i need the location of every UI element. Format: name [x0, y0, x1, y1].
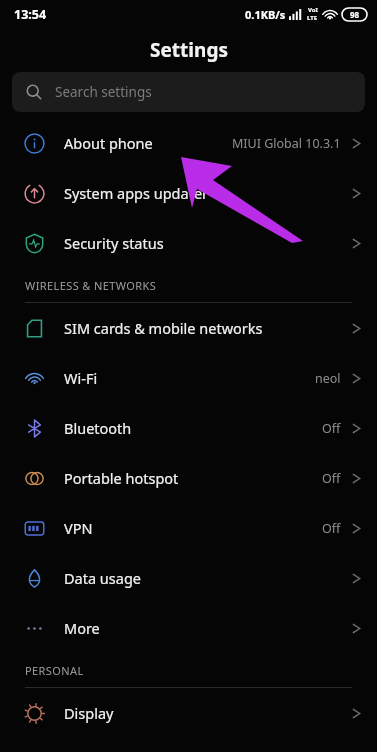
button[interactable]: About phone [0, 118, 377, 168]
staticText: Data usage [64, 568, 352, 588]
staticText: Settings [150, 37, 228, 63]
staticText: 98 [350, 9, 360, 20]
staticText: Search settings [55, 83, 152, 101]
staticText: Off [322, 470, 341, 487]
staticText: Portable hotspot [64, 468, 322, 488]
button[interactable]: VPN [0, 503, 377, 553]
button[interactable]: Wi-Fi [0, 353, 377, 403]
button[interactable]: System apps updater [0, 168, 377, 218]
button[interactable]: Portable hotspot [0, 453, 377, 503]
staticText: LTE [307, 14, 318, 22]
button[interactable]: Display [0, 688, 377, 738]
staticText: System apps updater [64, 183, 352, 203]
staticText: SIM cards & mobile networks [64, 318, 352, 338]
staticText: WIRELESS & NETWORKS [25, 278, 157, 293]
staticText: About phone [64, 133, 232, 153]
button[interactable]: Bluetooth [0, 403, 377, 453]
staticText: Off [322, 520, 341, 537]
staticText: More [64, 618, 352, 638]
staticText: MIUI Global 10.3.1 [232, 135, 341, 152]
staticText: Bluetooth [64, 418, 322, 438]
staticText: 0.1KB/s [245, 7, 286, 22]
staticText: 13:54 [14, 6, 47, 23]
staticText: VoI [308, 6, 318, 14]
button[interactable]: Search settings [12, 72, 365, 112]
staticText: VPN [64, 518, 322, 538]
staticText: Security status [64, 233, 352, 253]
button[interactable]: Security status [0, 218, 377, 268]
staticText: neol [315, 370, 341, 387]
button[interactable]: SIM cards & mobile networks [0, 303, 377, 353]
button[interactable]: Data usage [0, 553, 377, 603]
staticText: Wi-Fi [64, 368, 315, 388]
button[interactable]: More [0, 603, 377, 653]
staticText: Off [322, 420, 341, 437]
staticText: PERSONAL [25, 663, 84, 678]
staticText: Display [64, 703, 352, 723]
